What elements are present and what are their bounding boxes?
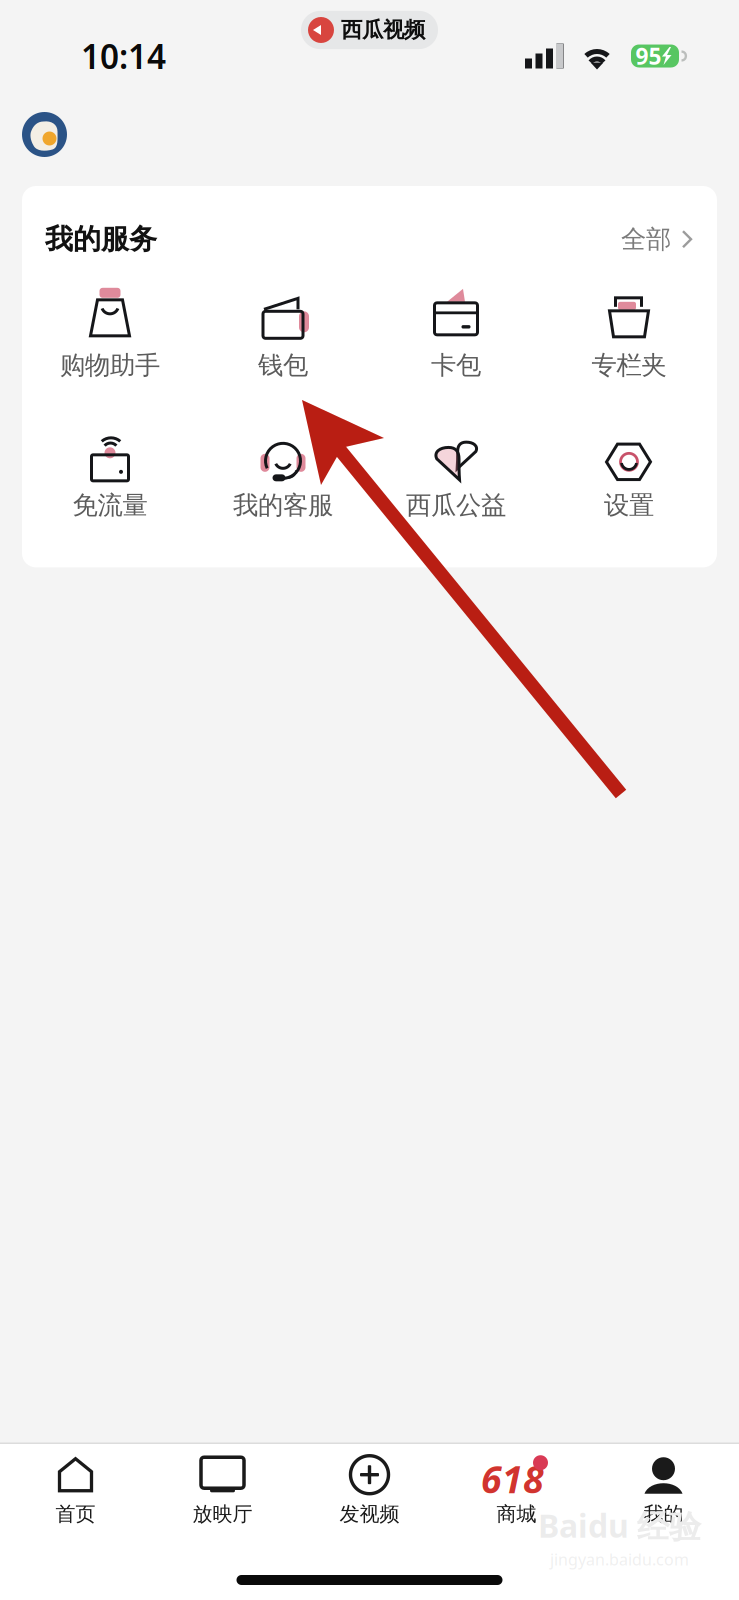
staticText: jingyan.baidu.com [550,1549,689,1570]
button[interactable]: Profile [22,112,67,157]
button[interactable]: 卡包 [369,289,542,381]
staticText: 618 [481,1454,544,1503]
staticText: 专栏夹 [591,350,666,381]
button[interactable]: 发视频 [296,1446,443,1536]
button[interactable]: 618 [443,1446,590,1536]
button[interactable]: 首页 [2,1446,149,1536]
staticText: 我的客服 [233,490,333,521]
staticText: 发视频 [339,1502,399,1526]
button[interactable]: 放映厅 [149,1446,296,1536]
staticText: 我的服务 [45,222,157,256]
staticText: 95 [635,41,661,71]
button[interactable]: 钱包 [196,289,369,381]
button[interactable]: 设置 [542,429,715,521]
staticText: 商城 [496,1502,536,1526]
button[interactable]: 西瓜公益 [369,429,542,521]
button[interactable]: 购物助手 [23,289,196,381]
staticText: 卡包 [431,350,481,381]
staticText: 我的 [643,1502,683,1526]
staticText: 西瓜公益 [406,490,506,521]
staticText: 全部 [621,224,671,255]
button[interactable]: 专栏夹 [542,289,715,381]
staticText: 设置 [604,490,654,521]
staticText: 购物助手 [60,350,160,381]
staticText: 西瓜视频 [341,17,425,43]
staticText: 钱包 [258,350,308,381]
staticText: Baidu 经验 [538,1504,701,1547]
staticText: 放映厅 [192,1502,252,1526]
staticText: 首页 [55,1502,95,1526]
button[interactable]: 免流量 [23,429,196,521]
button[interactable]: 全部 [621,224,694,255]
staticText: 10:14 [81,34,166,78]
staticText: 免流量 [72,490,147,521]
button[interactable]: 我的客服 [196,429,369,521]
button[interactable]: 我的 [590,1446,737,1536]
